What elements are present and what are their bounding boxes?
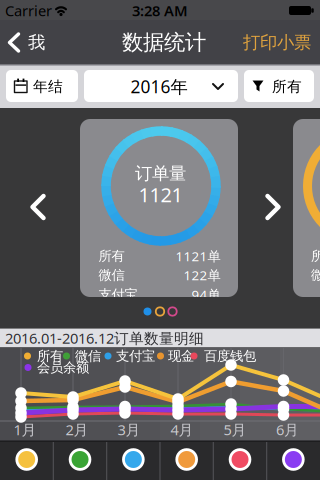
button[interactable]: 上一页 bbox=[30, 193, 46, 220]
staticText: 支付宝 bbox=[116, 348, 155, 364]
staticText: 打印小票 bbox=[243, 32, 311, 53]
button[interactable]: 年结 bbox=[6, 70, 78, 102]
staticText: 2016.01-2016.12订单数量明细 bbox=[5, 328, 204, 348]
staticText: 支付宝 bbox=[98, 286, 137, 303]
button[interactable]: 所有 bbox=[0, 440, 53, 479]
button[interactable]: 微信 bbox=[53, 440, 106, 479]
staticText: 微信 bbox=[311, 267, 320, 283]
staticText: 我 bbox=[28, 32, 45, 53]
button[interactable]: 支付宝 bbox=[107, 440, 160, 479]
button[interactable]: 下一页 bbox=[265, 193, 281, 220]
button[interactable]: 返回 我 bbox=[7, 20, 59, 64]
staticText: 现金 bbox=[168, 348, 194, 364]
staticText: 年结 bbox=[33, 77, 63, 95]
staticText: 所有 bbox=[37, 348, 63, 364]
staticText: 会员余额 bbox=[37, 359, 89, 376]
button[interactable]: 会员余额 bbox=[267, 440, 320, 479]
staticText: 94单 bbox=[191, 286, 220, 303]
staticText: 数据统计 bbox=[122, 29, 206, 56]
staticText: 3月 bbox=[117, 420, 140, 439]
staticText: 微信 bbox=[75, 348, 101, 364]
staticText: 6月 bbox=[276, 420, 299, 439]
staticText: 5月 bbox=[223, 420, 246, 439]
staticText: 4月 bbox=[170, 420, 193, 439]
staticText: 所有 bbox=[311, 248, 320, 264]
staticText: 所有 bbox=[98, 248, 124, 264]
staticText: 微信 bbox=[98, 267, 124, 283]
staticText: 122单 bbox=[183, 266, 220, 284]
staticText: 1121 bbox=[138, 181, 182, 208]
staticText: 1月 bbox=[13, 420, 36, 439]
staticText: 1121单 bbox=[175, 247, 220, 265]
staticText: 订单量 bbox=[135, 163, 186, 184]
staticText: Carrier bbox=[5, 1, 52, 20]
staticText: 3:28 AM bbox=[132, 1, 188, 20]
staticText: 所有 bbox=[272, 77, 302, 95]
staticText: 2月 bbox=[65, 420, 88, 439]
button[interactable]: 打印小票 bbox=[237, 20, 317, 64]
button[interactable]: 百度钱包 bbox=[213, 440, 266, 479]
staticText: 2016年 bbox=[130, 75, 187, 98]
button[interactable]: 所有 bbox=[244, 70, 314, 102]
button[interactable]: 现金 bbox=[160, 440, 213, 479]
button[interactable]: 2016年 bbox=[84, 70, 238, 102]
staticText: 百度钱包 bbox=[204, 348, 256, 364]
